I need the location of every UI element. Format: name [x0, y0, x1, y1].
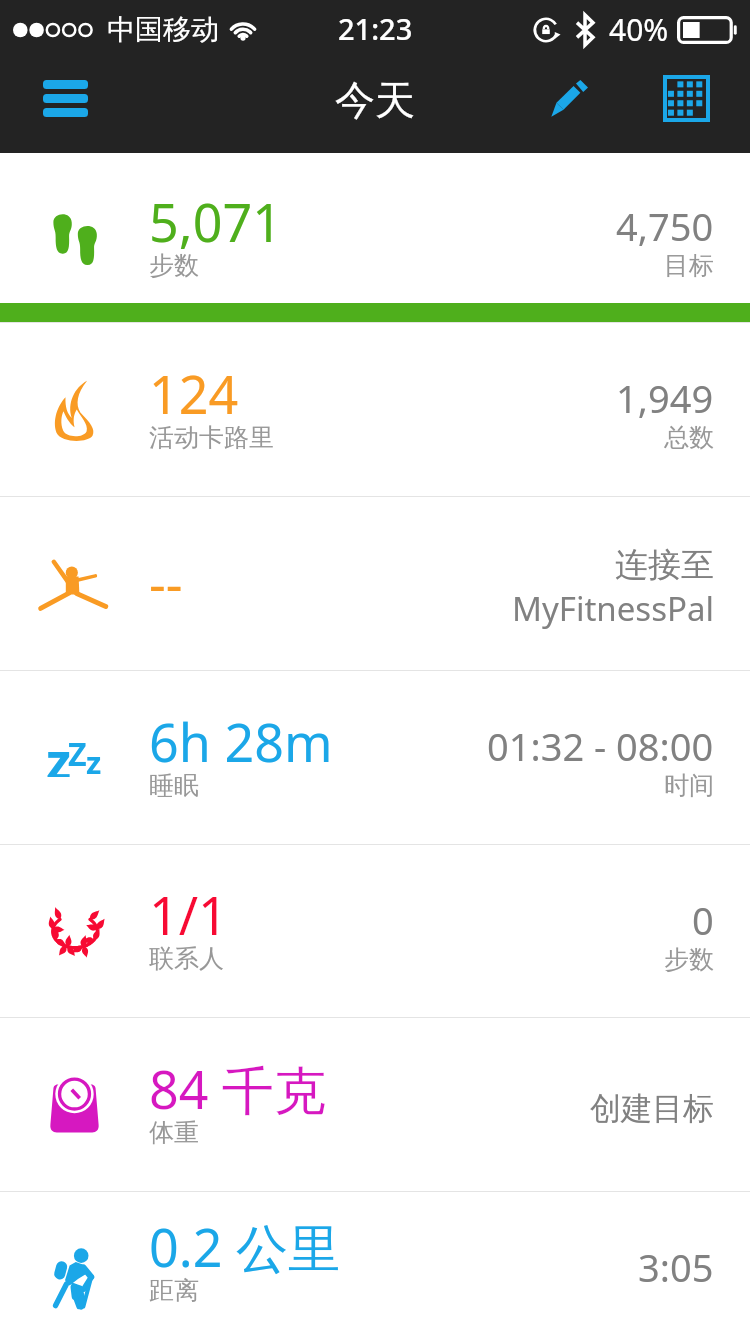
- staticText: 步数: [664, 944, 714, 975]
- staticText: 活动卡路里: [149, 422, 274, 453]
- staticText: 1,949: [616, 372, 714, 424]
- staticText: 总数: [664, 422, 714, 453]
- staticText: 今天: [335, 75, 415, 125]
- staticText: 6h 28m: [149, 706, 333, 777]
- staticText: 3:05: [638, 1241, 714, 1293]
- staticText: 步数: [149, 250, 199, 281]
- staticText: MyFitnessPal: [512, 586, 714, 631]
- button[interactable]: 1/1: [0, 845, 750, 1017]
- staticText: 时间: [664, 770, 714, 801]
- staticText: --: [149, 547, 183, 618]
- button[interactable]: z: [0, 671, 750, 844]
- staticText: 1/1: [149, 879, 228, 950]
- staticText: 创建目标: [590, 1089, 714, 1128]
- staticText: 01:32 - 08:00: [487, 720, 714, 772]
- staticText: 21:23: [338, 9, 413, 48]
- button[interactable]: Menu: [0, 60, 131, 153]
- button[interactable]: Calendar: [622, 60, 750, 153]
- staticText: 84 千克: [149, 1053, 327, 1124]
- staticText: 中国移动: [107, 12, 219, 47]
- button[interactable]: 0.2 公里: [0, 1192, 750, 1334]
- staticText: 40%: [609, 9, 669, 50]
- staticText: 124: [149, 358, 239, 429]
- button[interactable]: 84 千克: [0, 1018, 750, 1191]
- staticText: 联系人: [149, 943, 224, 974]
- staticText: 睡眠: [149, 770, 199, 801]
- staticText: 目标: [664, 250, 714, 281]
- staticText: 距离: [149, 1275, 199, 1306]
- button[interactable]: --: [0, 497, 750, 670]
- staticText: 体重: [149, 1117, 199, 1148]
- staticText: z: [86, 741, 102, 783]
- staticText: 0.2 公里: [149, 1211, 340, 1282]
- button[interactable]: 124: [0, 323, 750, 496]
- staticText: 4,750: [616, 200, 714, 252]
- staticText: 0: [692, 894, 714, 946]
- staticText: 5,071: [149, 186, 282, 257]
- button[interactable]: 5,071: [0, 153, 750, 322]
- button[interactable]: Edit: [509, 60, 622, 153]
- staticText: Z: [68, 732, 87, 776]
- staticText: 连接至: [615, 544, 714, 586]
- staticText: z: [46, 725, 72, 777]
